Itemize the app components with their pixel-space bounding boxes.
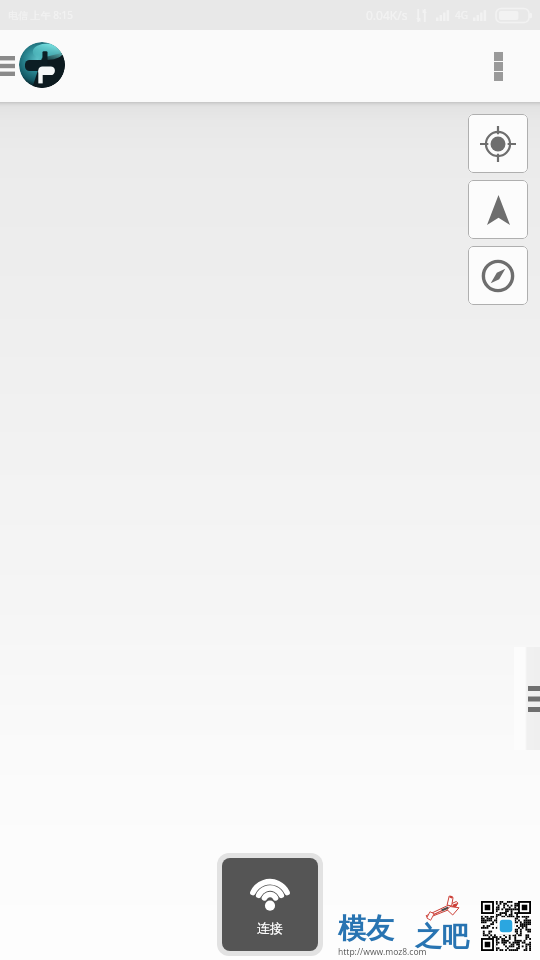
button[interactable]: Menu: [0, 44, 14, 88]
staticText: 连接: [257, 920, 283, 936]
staticText: 0.04K/s: [366, 7, 408, 23]
staticText: 电信 上午 8:15: [8, 8, 74, 22]
staticText: 4G: [455, 8, 468, 22]
button[interactable]: Navigation: [468, 180, 528, 239]
button[interactable]: My location: [468, 114, 528, 173]
staticText: 之吧: [415, 920, 469, 954]
button[interactable]: App logo: [19, 42, 65, 88]
button[interactable]: Compass: [468, 246, 528, 305]
button[interactable]: Open panel: [514, 647, 540, 750]
button[interactable]: Connect via Wi-Fi: [217, 853, 323, 956]
staticText: http://www.moz8.com: [338, 946, 427, 958]
staticText: 模友: [338, 911, 394, 946]
button[interactable]: More options: [476, 44, 520, 88]
